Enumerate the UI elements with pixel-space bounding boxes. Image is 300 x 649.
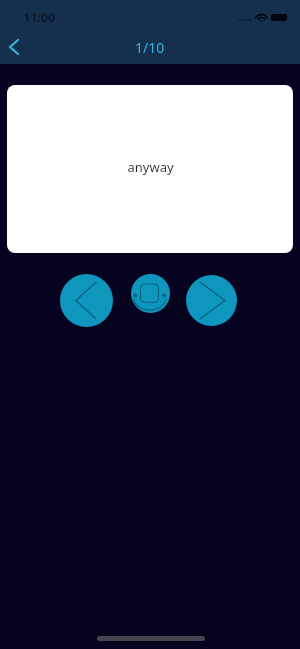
button[interactable]: Flip card <box>131 274 170 313</box>
button[interactable]: Previous card <box>60 274 113 327</box>
staticText: 11:00 <box>23 9 56 26</box>
button[interactable]: Next card <box>186 275 237 326</box>
staticText: anyway <box>127 158 174 176</box>
button[interactable]: anyway <box>7 85 293 253</box>
staticText: 1/10 <box>135 38 165 57</box>
button[interactable]: Back <box>1 33 27 59</box>
